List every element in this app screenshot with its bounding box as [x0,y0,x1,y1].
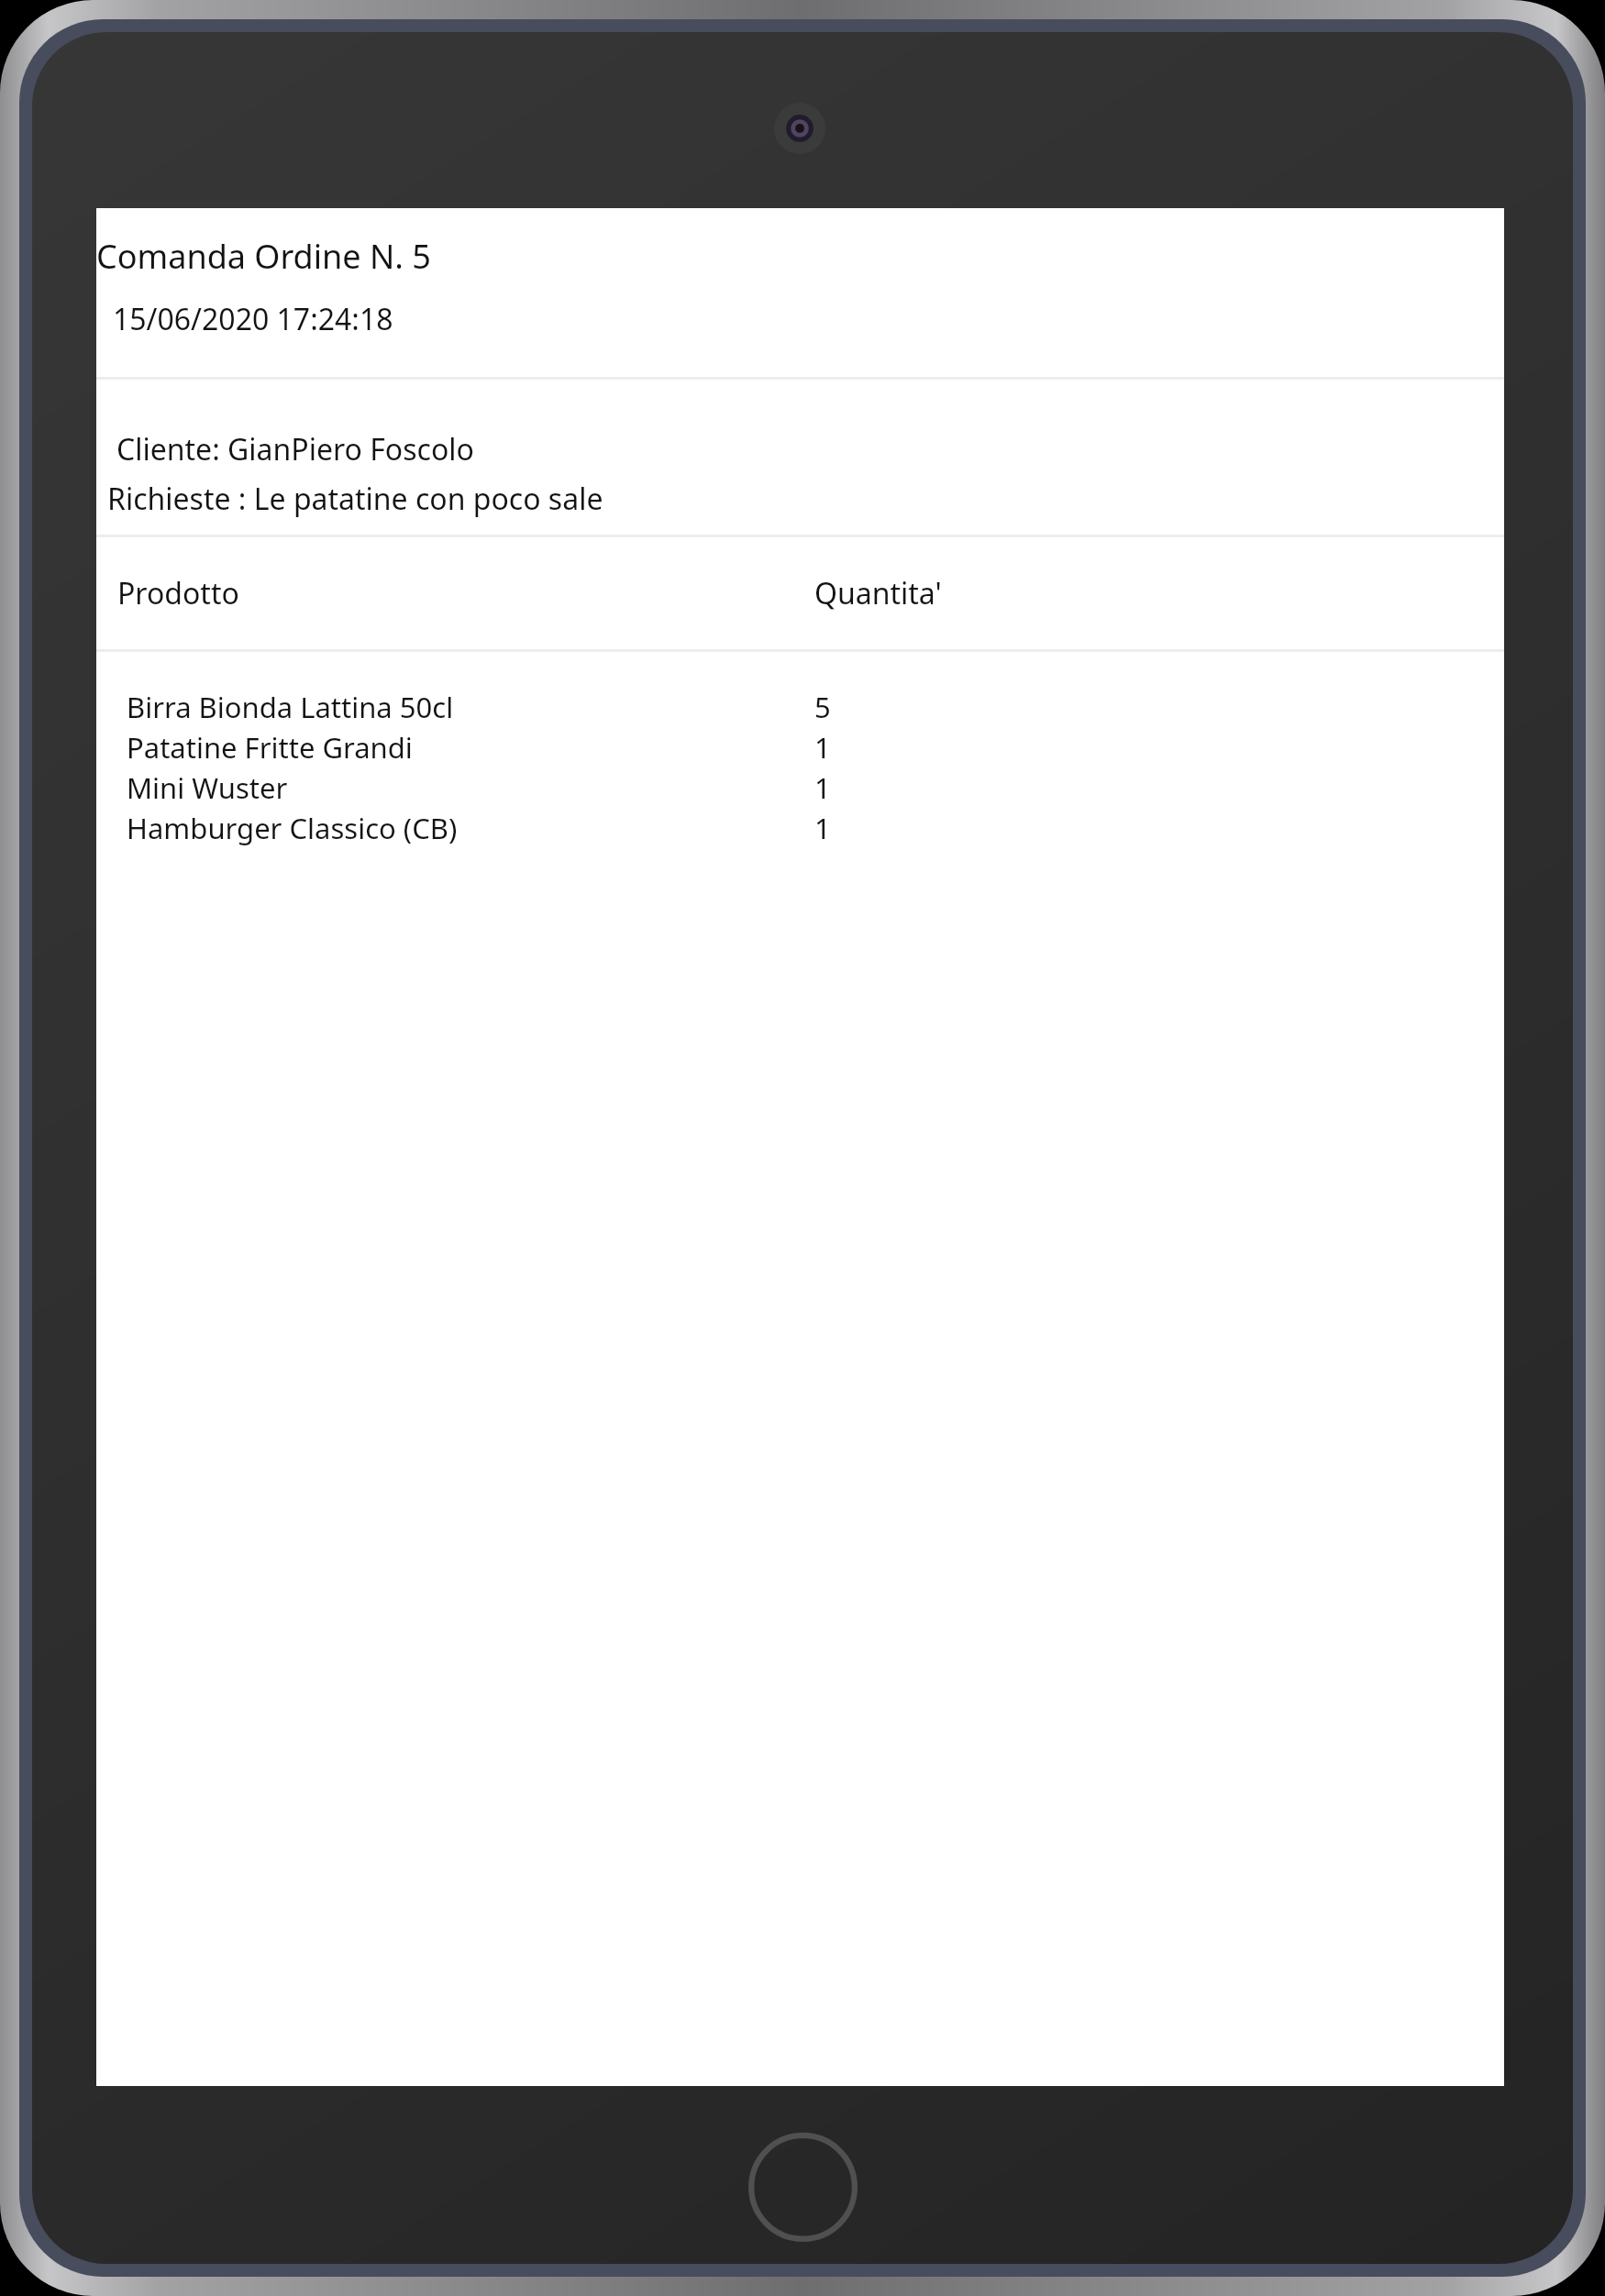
staticText: 1 [814,728,831,767]
staticText: Richieste : Le patatine con poco sale [107,479,603,519]
button[interactable]: Hamburger Classico (CB) [96,808,1504,848]
staticText: Patatine Fritte Grandi [127,728,413,767]
staticText: 15/06/2020 17:24:18 [113,299,393,339]
staticText: 1 [814,809,831,847]
staticText: Comanda Ordine N. 5 [96,234,431,279]
button[interactable]: Patatine Fritte Grandi [96,727,1504,767]
staticText: Hamburger Classico (CB) [127,809,458,847]
staticText: Birra Bionda Lattina 50cl [127,688,454,726]
staticText: Mini Wuster [127,768,288,807]
staticText: 1 [814,768,831,807]
staticText: Prodotto [117,573,239,613]
button[interactable]: Comanda Ordine N. 5 [96,208,1504,377]
staticText: Quantita' [814,573,942,613]
button[interactable]: Birra Bionda Lattina 50cl [96,687,1504,727]
staticText: Cliente: GianPiero Foscolo [116,429,474,469]
staticText: 5 [814,688,831,726]
button[interactable]: Prodotto [96,537,1504,649]
button[interactable]: Cliente: GianPiero Foscolo [96,380,1504,535]
button[interactable]: Mini Wuster [96,767,1504,808]
